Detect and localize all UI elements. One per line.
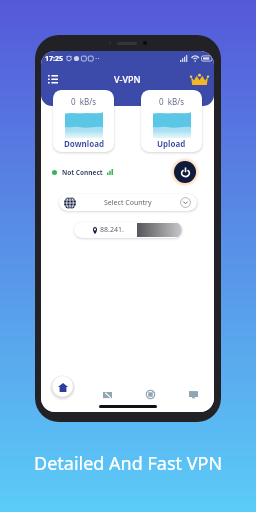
staticText: Not Connect (62, 168, 103, 177)
staticText: Select Country (104, 198, 152, 208)
button[interactable]: 0 kB/s (141, 90, 202, 152)
staticText: Upload (157, 138, 186, 149)
button[interactable]: Settings (171, 372, 214, 412)
button[interactable]: Power (174, 161, 196, 183)
button[interactable]: Speed test (128, 372, 171, 412)
staticText: Download (64, 138, 104, 149)
staticText: 0 kB/s (71, 96, 97, 107)
button[interactable]: Home (41, 372, 85, 412)
button[interactable]: Servers (85, 372, 128, 412)
button[interactable]: Menu (45, 71, 61, 87)
button[interactable]: 0 kB/s (53, 90, 114, 152)
staticText: 88.241. (100, 225, 124, 235)
staticText: Detailed And Fast VPN (34, 451, 223, 476)
staticText: 17:25 (45, 54, 63, 64)
staticText: V-VPN (114, 73, 141, 85)
button[interactable]: 88.241. (74, 222, 182, 238)
button[interactable]: Select Country (59, 194, 197, 211)
staticText: 0 kB/s (159, 96, 185, 107)
button[interactable]: Premium (190, 69, 209, 88)
